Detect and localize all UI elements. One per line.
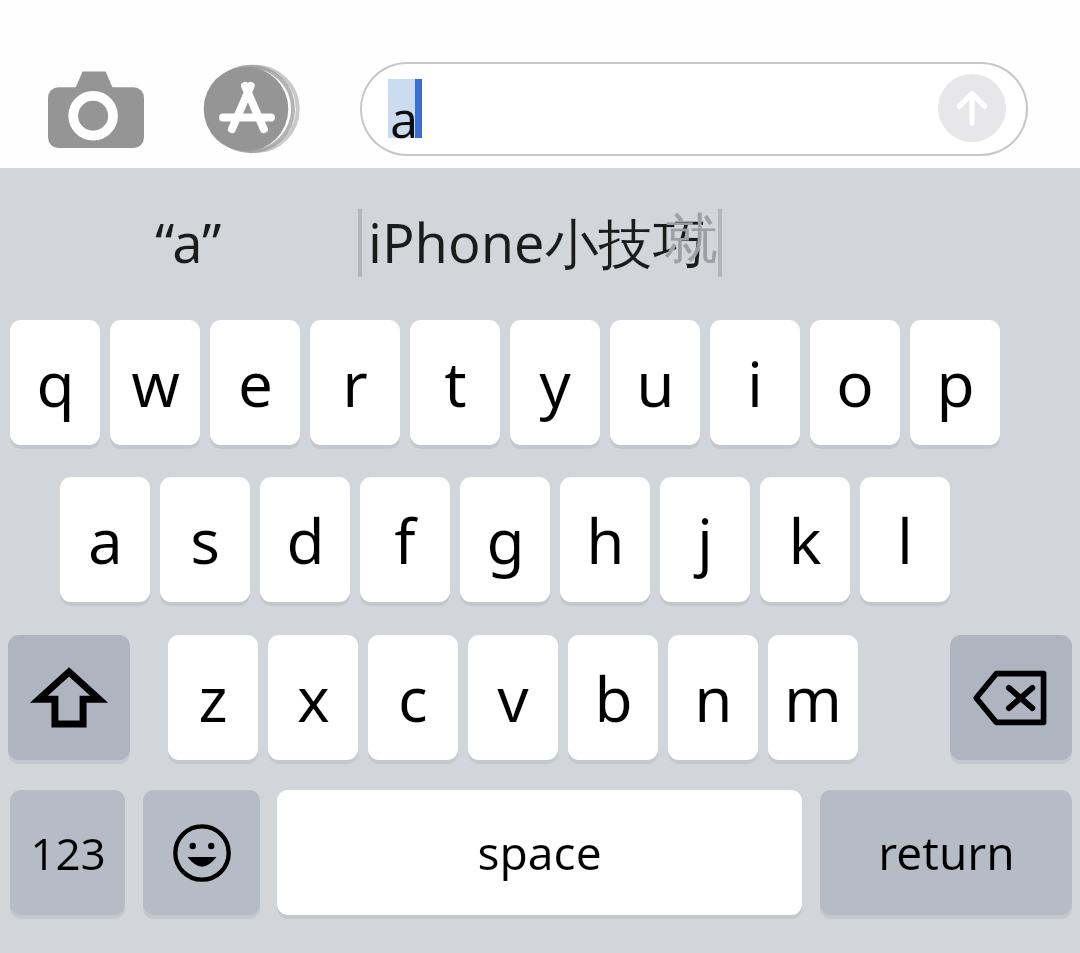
staticText: a — [390, 85, 419, 153]
button[interactable]: x — [268, 635, 358, 760]
button[interactable]: i — [710, 320, 800, 445]
button[interactable]: iPhone小技巧 — [368, 204, 720, 280]
staticText: a — [88, 498, 123, 582]
staticText: b — [594, 656, 633, 740]
staticText: x — [297, 656, 330, 740]
staticText: 就 — [664, 205, 718, 273]
button[interactable]: m — [768, 635, 858, 760]
staticText: m — [784, 656, 842, 740]
button[interactable]: v — [468, 635, 558, 760]
staticText: r — [342, 341, 368, 425]
staticText: c — [398, 656, 428, 740]
staticText: z — [198, 656, 228, 740]
button[interactable]: p — [910, 320, 1000, 445]
button[interactable]: d — [260, 477, 350, 602]
staticText: u — [636, 341, 675, 425]
staticText: n — [694, 656, 733, 740]
button[interactable]: return — [820, 790, 1072, 915]
button[interactable]: q — [10, 320, 100, 445]
button[interactable]: App Store — [196, 60, 308, 158]
staticText: k — [788, 498, 822, 582]
staticText: v — [497, 656, 529, 740]
button[interactable]: s — [160, 477, 250, 602]
button[interactable]: Backspace — [950, 635, 1072, 760]
staticText: g — [486, 498, 525, 582]
button[interactable]: u — [610, 320, 700, 445]
button[interactable]: e — [210, 320, 300, 445]
button[interactable]: Shift — [8, 635, 130, 760]
button[interactable]: Camera — [40, 62, 152, 156]
button[interactable]: k — [760, 477, 850, 602]
button[interactable]: o — [810, 320, 900, 445]
staticText: y — [539, 341, 571, 425]
button[interactable]: r — [310, 320, 400, 445]
button[interactable]: f — [360, 477, 450, 602]
staticText: o — [836, 341, 874, 425]
button[interactable]: c — [368, 635, 458, 760]
button[interactable]: h — [560, 477, 650, 602]
button[interactable]: Emoji — [143, 790, 260, 915]
staticText: h — [586, 498, 625, 582]
staticText: “a” — [155, 205, 222, 279]
staticText: w — [131, 341, 180, 425]
button[interactable]: g — [460, 477, 550, 602]
staticText: f — [394, 498, 416, 582]
button[interactable]: 123 — [10, 790, 125, 915]
button[interactable]: t — [410, 320, 500, 445]
button[interactable]: n — [668, 635, 758, 760]
staticText: s — [190, 498, 220, 582]
staticText: e — [238, 341, 273, 425]
staticText: q — [36, 341, 75, 425]
staticText: space — [477, 821, 602, 884]
button[interactable] — [362, 64, 1026, 154]
staticText: l — [897, 498, 913, 582]
button[interactable]: l — [860, 477, 950, 602]
button[interactable]: space — [277, 790, 802, 915]
button[interactable]: w — [110, 320, 200, 445]
button[interactable]: j — [660, 477, 750, 602]
staticText: j — [697, 498, 713, 582]
button[interactable]: a — [60, 477, 150, 602]
staticText: 123 — [30, 823, 106, 883]
staticText: iPhone小技巧 — [368, 205, 707, 279]
button[interactable]: Send — [938, 74, 1006, 142]
staticText: d — [286, 498, 325, 582]
staticText: return — [878, 821, 1015, 884]
button[interactable]: b — [568, 635, 658, 760]
button[interactable]: “a” — [112, 204, 264, 280]
staticText: t — [444, 341, 467, 425]
button[interactable]: z — [168, 635, 258, 760]
staticText: i — [747, 341, 763, 425]
button[interactable]: y — [510, 320, 600, 445]
staticText: p — [936, 341, 975, 425]
